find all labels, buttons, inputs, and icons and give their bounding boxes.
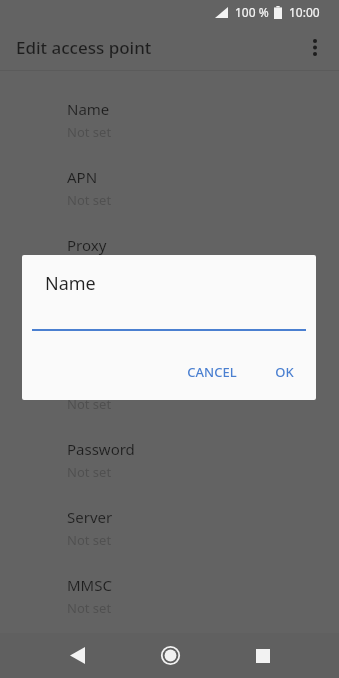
button[interactable]: Server — [0, 497, 339, 565]
staticText: Not set — [67, 191, 112, 209]
button[interactable]: Proxy — [0, 225, 339, 293]
staticText: Edit access point — [16, 36, 152, 59]
staticText: Not set — [67, 395, 112, 413]
staticText: Not set — [67, 599, 112, 617]
button[interactable]: Home — [146, 633, 194, 678]
staticText: CANCEL — [187, 363, 237, 381]
button[interactable]: APN — [0, 157, 339, 225]
staticText: Not set — [67, 327, 112, 345]
button[interactable]: More options — [291, 24, 339, 70]
staticText: Proxy — [67, 235, 107, 255]
staticText: Not set — [67, 123, 112, 141]
button[interactable]: Username — [0, 361, 339, 429]
button[interactable]: MMSC — [0, 565, 339, 633]
button[interactable]: Back — [53, 633, 101, 678]
button[interactable]: CANCEL — [175, 354, 249, 390]
staticText: 10:00 — [289, 4, 320, 20]
button[interactable]: Password — [0, 429, 339, 497]
staticText: Name — [67, 99, 110, 119]
staticText: Password — [67, 439, 135, 459]
button[interactable]: Port — [0, 293, 339, 361]
staticText: MMSC — [67, 575, 112, 595]
staticText: Server — [67, 507, 113, 527]
button[interactable]: OK — [263, 354, 306, 390]
staticText: APN — [67, 167, 98, 187]
staticText: 100 % — [235, 4, 269, 20]
staticText: Not set — [67, 531, 112, 549]
staticText: Name — [45, 271, 96, 296]
button[interactable]: Recent apps — [239, 633, 287, 678]
staticText: OK — [275, 363, 294, 381]
staticText: Not set — [67, 463, 112, 481]
button[interactable]: Name — [0, 89, 339, 157]
